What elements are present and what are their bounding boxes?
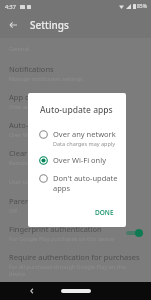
staticText: 4:37 [5, 3, 16, 10]
button[interactable]: Notifications [0, 60, 151, 88]
staticText: Over Wi-Fi only [9, 131, 48, 138]
staticText: General [9, 45, 30, 52]
staticText: Over any network [9, 103, 55, 110]
staticText: 85% [137, 3, 147, 10]
button[interactable]: Parental controls [0, 192, 151, 220]
button[interactable]: App download preference [0, 88, 151, 116]
button[interactable]: Don't auto-update apps [28, 169, 126, 197]
staticText: Over Wi-Fi only [53, 155, 106, 165]
button[interactable]: Navigate up [6, 18, 20, 32]
button[interactable]: Over Wi-Fi only [28, 151, 126, 169]
staticText: Clear local search history [9, 148, 97, 158]
staticText: DONE [95, 208, 114, 217]
staticText: App download preference [9, 92, 100, 102]
staticText: User controls [9, 178, 44, 185]
button[interactable]: Google Play Instant [0, 283, 151, 300]
staticText: For Google Play purchases on this device [9, 235, 115, 242]
button[interactable]: Back [28, 287, 36, 295]
staticText: Parental controls [9, 196, 69, 206]
staticText: Fingerprint authentication [9, 224, 102, 234]
staticText: Manage notification settings [9, 75, 83, 82]
staticText: Remove the searches you have performed [9, 159, 118, 166]
staticText: Data charges may apply [53, 140, 116, 147]
staticText: Auto-update apps [9, 120, 73, 130]
button[interactable]: Over any network [28, 125, 126, 151]
button[interactable]: DONE [90, 205, 119, 220]
staticText: Don't auto-update apps [53, 173, 118, 193]
button[interactable]: Require authentication for purchases [0, 248, 151, 283]
staticText: Over any network [53, 129, 116, 139]
button[interactable]: Clear local search history [0, 144, 151, 172]
staticText: Settings [30, 18, 69, 32]
staticText: Off [9, 207, 18, 214]
staticText: Auto-update apps [40, 104, 113, 116]
staticText: Google Play Instant [9, 287, 78, 294]
staticText: Notifications [9, 64, 54, 74]
button[interactable]: Fingerprint authentication [0, 220, 151, 248]
button[interactable]: Home [61, 289, 91, 293]
button[interactable]: Auto-update apps [0, 116, 151, 144]
staticText: Require authentication for purchases [9, 252, 140, 262]
